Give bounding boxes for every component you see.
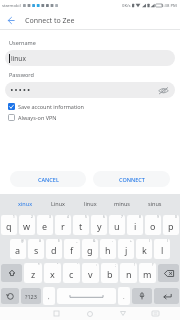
staticText: z: [31, 268, 36, 280]
staticText: _: [76, 239, 78, 243]
button[interactable]: r: [55, 215, 71, 235]
staticText: y: [97, 220, 102, 232]
button[interactable]: linux: [84, 200, 97, 207]
button[interactable]: n: [120, 263, 137, 283]
staticText: r: [61, 220, 65, 232]
staticText: @: [21, 239, 24, 243]
staticText: m: [143, 268, 152, 280]
button[interactable]: e: [37, 215, 53, 235]
button[interactable]: Show password: [158, 85, 169, 96]
button[interactable]: g: [82, 239, 98, 259]
staticText: Username: [9, 39, 36, 46]
staticText: (: [149, 239, 150, 243]
button[interactable]: u: [109, 215, 125, 235]
button[interactable]: d: [46, 239, 62, 259]
button[interactable]: h: [100, 239, 116, 259]
staticText: Password: [9, 71, 34, 78]
staticText: ?123: [25, 293, 37, 300]
staticText: 9: [157, 215, 159, 219]
staticText: 7: [121, 215, 123, 219]
staticText: l: [161, 244, 164, 256]
button[interactable]: CANCEL: [10, 171, 86, 187]
button[interactable]: linux: [5, 50, 175, 66]
staticText: g: [87, 244, 93, 256]
staticText: -: [112, 239, 114, 243]
staticText: :: [96, 263, 97, 267]
button[interactable]: Home: [73, 307, 106, 320]
button[interactable]: Show password: [5, 82, 175, 98]
staticText: Save account information: [18, 103, 85, 110]
button[interactable]: j: [118, 239, 134, 259]
button[interactable]: i: [127, 215, 143, 235]
button[interactable]: a: [10, 239, 26, 259]
button[interactable]: Navigate up: [0, 11, 22, 30]
button[interactable]: Hide keyboard: [139, 307, 172, 320]
button[interactable]: Recent apps: [40, 307, 73, 320]
staticText: n: [126, 268, 132, 280]
staticText: $: [58, 239, 60, 243]
staticText: f: [70, 244, 74, 256]
staticText: w: [23, 220, 31, 232]
button[interactable]: x: [44, 263, 61, 283]
button[interactable]: Emoji: [1, 288, 19, 304]
button[interactable]: sinus: [148, 200, 162, 207]
staticText: 4: [67, 215, 69, 219]
button[interactable]: s: [28, 239, 44, 259]
button[interactable]: Backspace: [158, 264, 179, 282]
button[interactable]: q: [1, 215, 17, 235]
button[interactable]: f: [64, 239, 80, 259]
button[interactable]: w: [19, 215, 35, 235]
button[interactable]: Save account information: [8, 102, 180, 110]
button[interactable]: Linux: [51, 200, 66, 207]
button[interactable]: minus: [114, 200, 130, 207]
staticText: 2: [31, 215, 33, 219]
button[interactable]: Shift: [1, 264, 22, 282]
staticText: *: [38, 263, 40, 267]
button[interactable]: Always-on VPN: [8, 113, 180, 121]
button[interactable]: xinux: [18, 200, 33, 207]
staticText: s: [34, 244, 39, 256]
button[interactable]: c: [63, 263, 80, 283]
button[interactable]: b: [101, 263, 118, 283]
staticText: 5: [85, 215, 87, 219]
button[interactable]: .: [118, 287, 130, 305]
button[interactable]: Back: [106, 307, 139, 320]
staticText: 6: [103, 215, 105, 219]
staticText: i: [134, 220, 137, 232]
button[interactable]: ?123: [21, 288, 41, 304]
button[interactable]: CONNECT: [93, 171, 170, 187]
button[interactable]: ,: [43, 287, 55, 305]
staticText: #: [39, 239, 42, 243]
staticText: o: [150, 220, 156, 232]
staticText: x: [50, 268, 55, 280]
button[interactable]: p: [163, 215, 179, 235]
staticText: xinux: [18, 200, 33, 207]
staticText: ;: [115, 263, 116, 267]
button[interactable]: z: [24, 263, 42, 283]
button[interactable]: v: [82, 263, 99, 283]
button[interactable]: l: [154, 239, 170, 259]
staticText: Linux: [51, 200, 66, 207]
button[interactable]: y: [91, 215, 107, 235]
staticText: CANCEL: [38, 176, 59, 183]
staticText: 5:38 PM: [161, 3, 177, 9]
button[interactable]: Space: [57, 288, 116, 304]
staticText: v: [88, 268, 93, 280]
button[interactable]: Enter: [154, 288, 179, 304]
staticText: 1: [13, 215, 15, 219]
staticText: q: [6, 220, 12, 232]
button[interactable]: o: [145, 215, 161, 235]
button[interactable]: m: [139, 263, 156, 283]
button[interactable]: k: [136, 239, 152, 259]
staticText: CONNECT: [119, 176, 145, 183]
staticText: ): [167, 239, 168, 243]
staticText: linux: [11, 54, 26, 63]
staticText: ': [77, 263, 78, 267]
staticText: d: [51, 244, 57, 256]
staticText: ,: [48, 293, 50, 301]
staticText: &: [93, 239, 96, 243]
staticText: 0K/s: [122, 3, 131, 9]
button[interactable]: Voice input: [132, 288, 152, 304]
button[interactable]: t: [73, 215, 89, 235]
staticText: linux: [84, 200, 97, 207]
